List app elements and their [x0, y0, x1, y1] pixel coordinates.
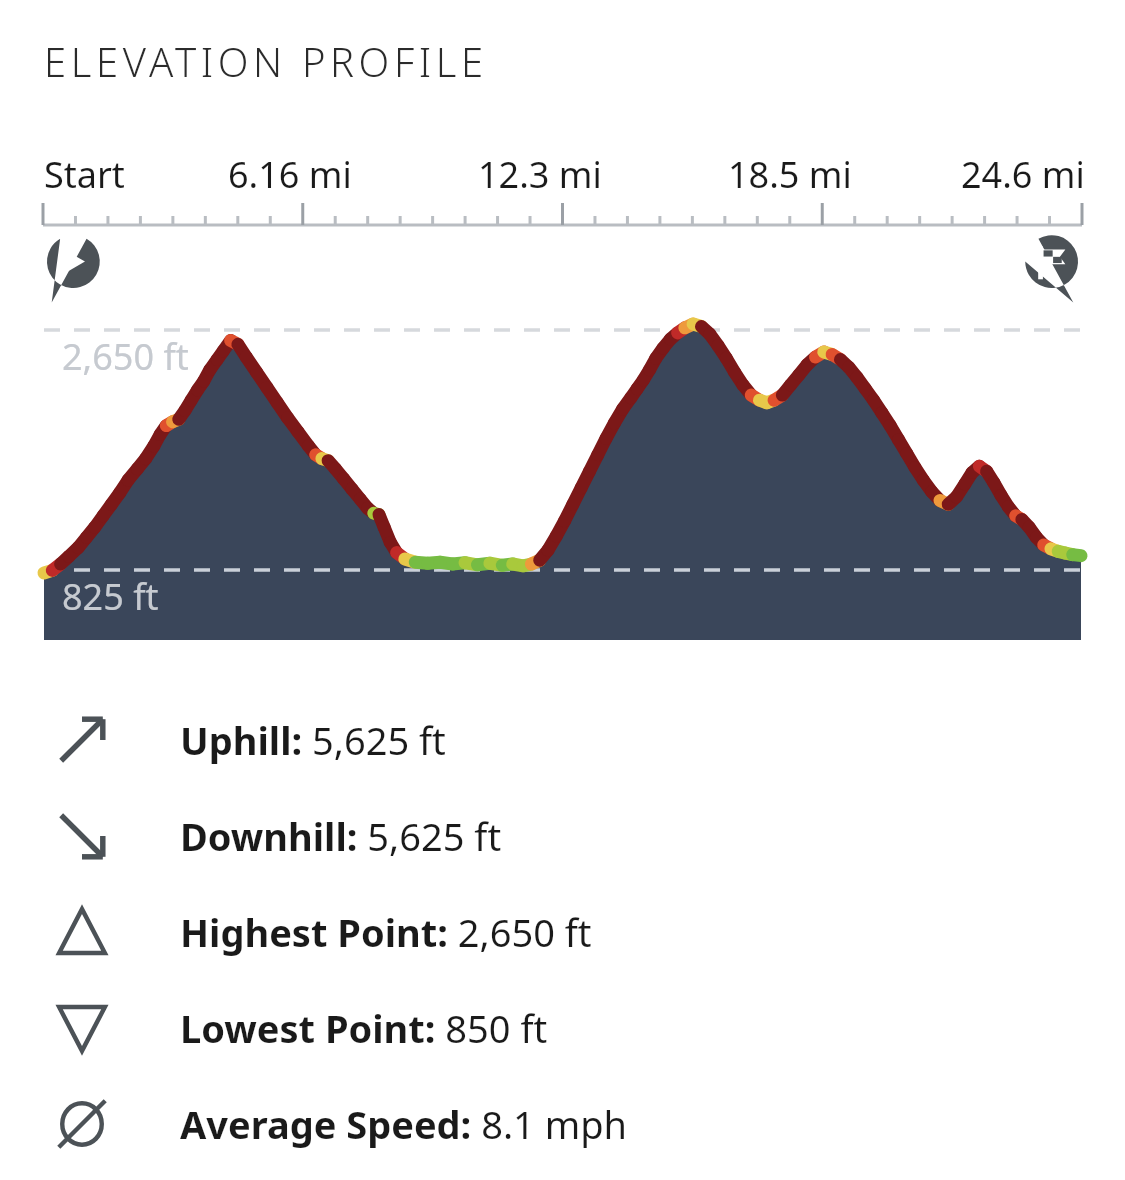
button[interactable]: Highest Point: 2,650 ft	[0, 884, 1125, 980]
button[interactable]: 2,650 ft	[0, 310, 1125, 658]
button[interactable]: Start of route	[43, 232, 109, 306]
staticText: 18.5 mi	[728, 150, 852, 199]
staticText: Start	[44, 150, 125, 199]
staticText: 24.6 mi	[961, 150, 1085, 199]
staticText: 2,650 ft	[62, 332, 189, 381]
button[interactable]: Downhill: 5,625 ft	[0, 788, 1125, 884]
staticText: 6.16 mi	[228, 150, 352, 199]
staticText: 825 ft	[62, 572, 159, 621]
button[interactable]: Lowest Point: 850 ft	[0, 980, 1125, 1076]
staticText: Average Speed: 8.1 mph	[180, 1098, 628, 1150]
staticText: Highest Point: 2,650 ft	[180, 906, 592, 958]
staticText: Uphill: 5,625 ft	[180, 714, 446, 766]
button[interactable]: Uphill: 5,625 ft	[0, 692, 1125, 788]
staticText: ELEVATION PROFILE	[44, 34, 488, 88]
button[interactable]: Average Speed: 8.1 mph	[0, 1076, 1125, 1172]
staticText: Lowest Point: 850 ft	[180, 1002, 548, 1054]
staticText: Downhill: 5,625 ft	[180, 810, 502, 862]
button[interactable]: Finish of route	[1016, 232, 1082, 306]
staticText: 12.3 mi	[478, 150, 602, 199]
